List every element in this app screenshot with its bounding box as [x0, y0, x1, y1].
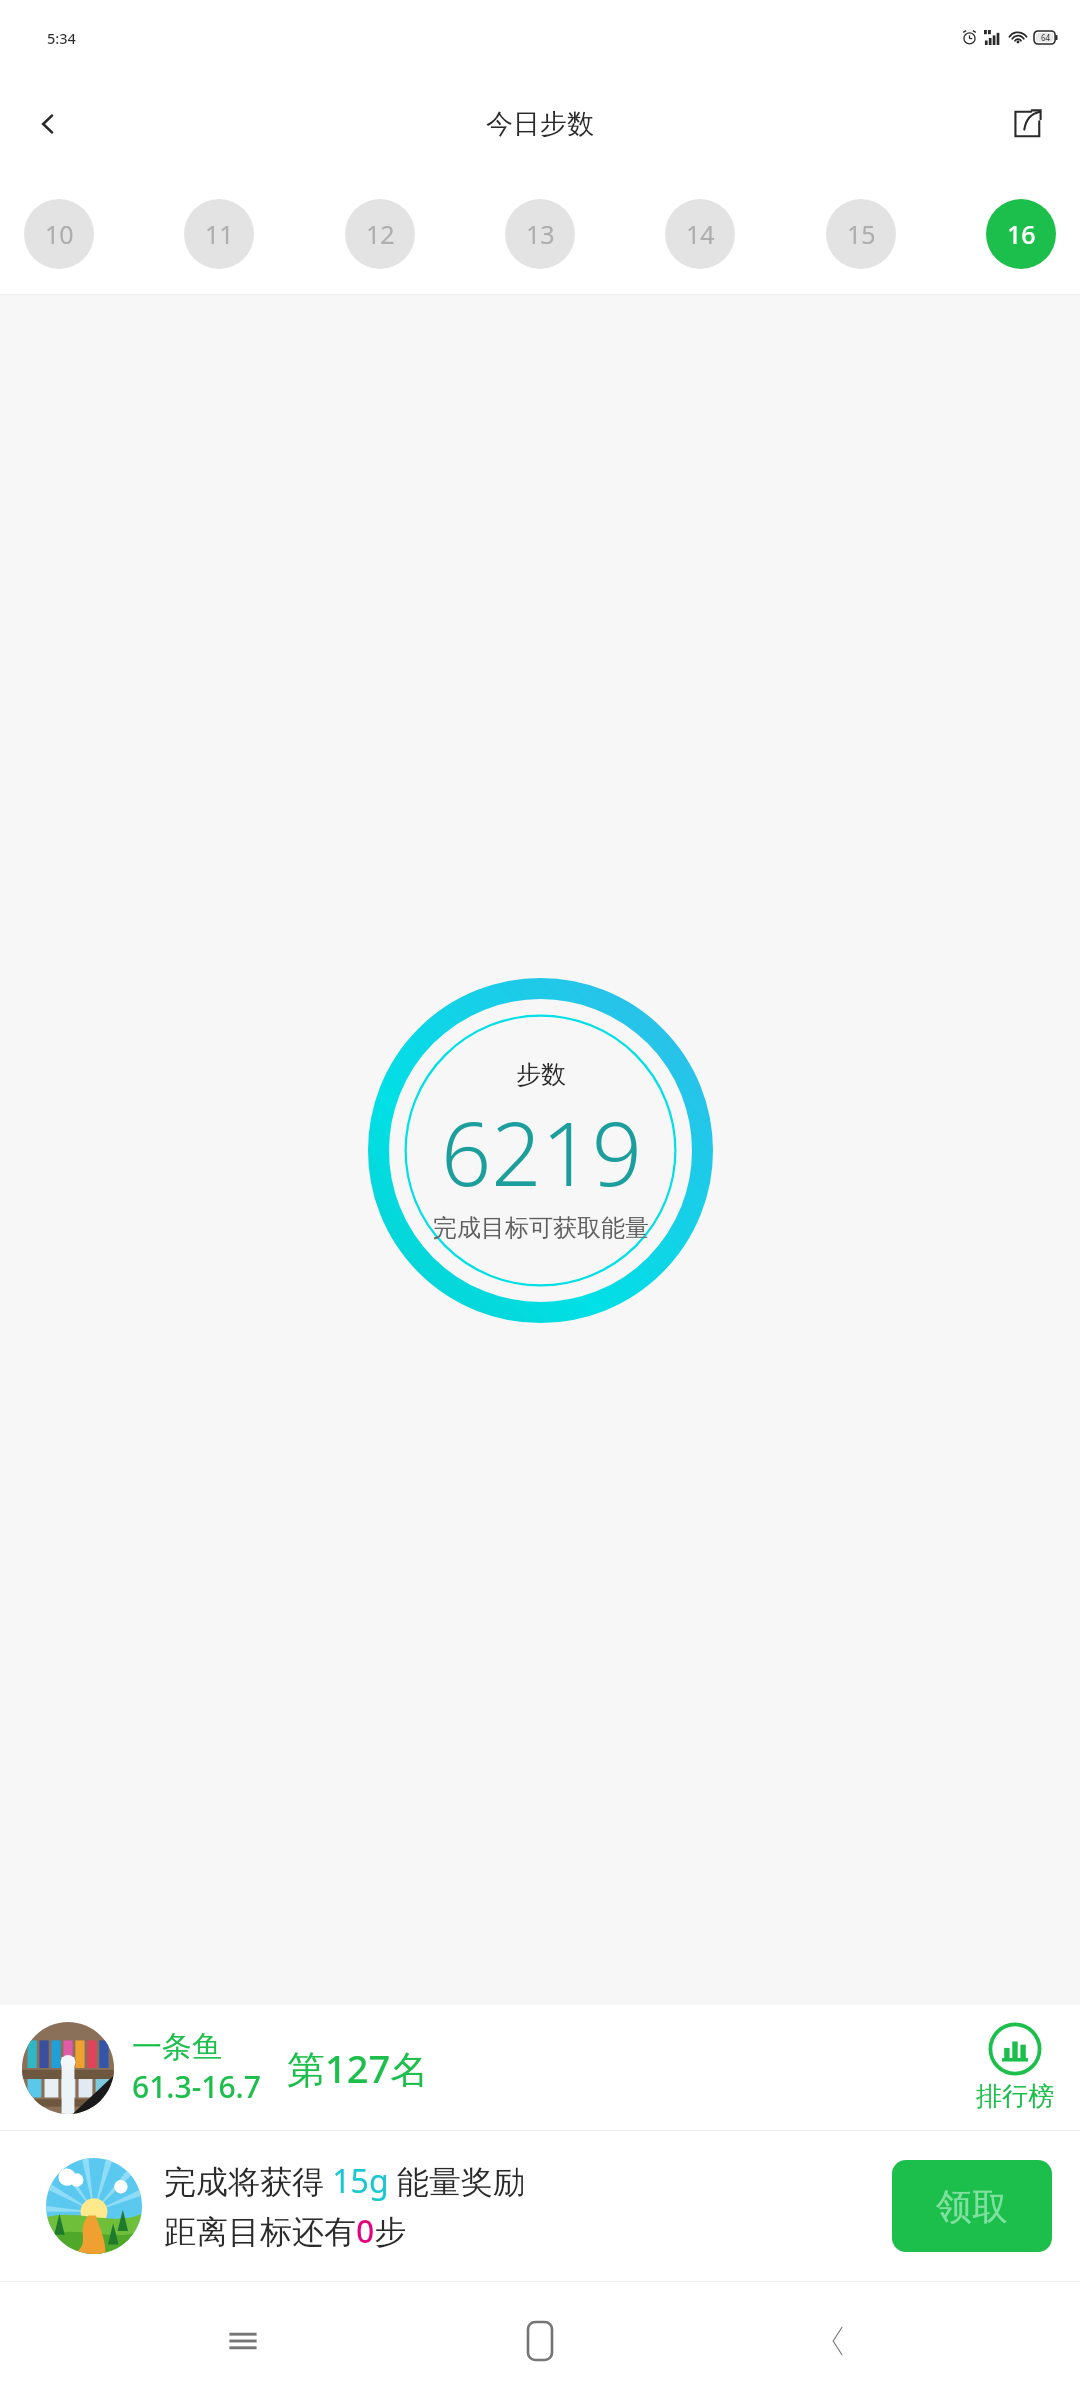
button[interactable]: 一条鱼 — [0, 2005, 1080, 2130]
button[interactable]: Share — [996, 93, 1058, 155]
staticText: 16 — [1007, 217, 1036, 251]
staticText: 12 — [366, 217, 395, 251]
staticText: 完成目标可获取能量 — [433, 1213, 649, 1243]
button[interactable]: Back — [18, 94, 78, 154]
staticText: 64 — [1041, 32, 1051, 43]
staticText: 领取 — [936, 2184, 1008, 2229]
staticText: 今日步数 — [486, 107, 594, 141]
staticText: 14 — [686, 217, 715, 251]
staticText: 10 — [45, 217, 74, 251]
button[interactable]: 11 — [184, 199, 254, 269]
staticText: 完成将获得 15g 能量奖励 — [164, 2159, 525, 2203]
staticText: 距离目标还有0步 — [164, 2209, 407, 2253]
button[interactable]: 16 — [986, 199, 1056, 269]
staticText: 11 — [205, 217, 234, 251]
button[interactable]: Back — [783, 2286, 893, 2396]
staticText: 第127名 — [287, 2042, 429, 2094]
staticText: 13 — [526, 217, 555, 251]
staticText: 6219 — [441, 1092, 642, 1212]
button[interactable]: 10 — [24, 199, 94, 269]
button[interactable]: 12 — [345, 199, 415, 269]
button[interactable]: 领取 — [892, 2160, 1052, 2252]
staticText: 5:34 — [47, 28, 76, 48]
staticText: 15 — [847, 217, 876, 251]
staticText: 61.3-16.7 — [132, 2066, 261, 2107]
button[interactable]: Recent apps — [188, 2286, 298, 2396]
button[interactable]: Home — [485, 2286, 595, 2396]
button[interactable]: 14 — [665, 199, 735, 269]
staticText: 步数 — [516, 1059, 566, 1090]
button[interactable]: 15 — [826, 199, 896, 269]
button[interactable]: 排行榜 — [972, 2022, 1058, 2113]
staticText: 排行榜 — [976, 2080, 1054, 2113]
staticText: 一条鱼 — [132, 2028, 222, 2066]
button[interactable]: 13 — [505, 199, 575, 269]
